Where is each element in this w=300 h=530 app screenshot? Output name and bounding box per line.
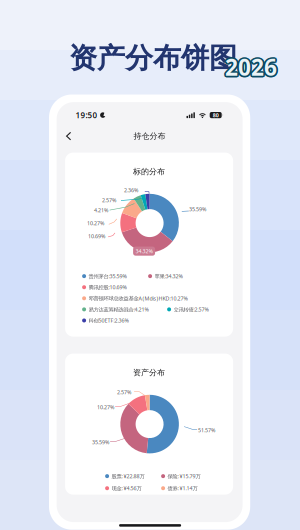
staticText: 股票: ¥22.88万 [112, 473, 145, 480]
staticText: 2026 [226, 53, 278, 83]
staticText: 2026 [225, 54, 277, 84]
staticText: 债券: ¥1.14万 [168, 485, 198, 492]
staticText: 科创50ETF:2.36% [89, 317, 129, 324]
staticText: 持仓分布 [134, 131, 166, 141]
staticText: 34.32% [136, 248, 153, 255]
staticText: 腾讯控股:10.69% [89, 284, 127, 291]
staticText: 保险: ¥15.79万 [168, 473, 201, 480]
staticText: 现金: ¥4.56万 [112, 485, 142, 492]
button[interactable]: Back [61, 126, 77, 146]
staticText: 2.57% [117, 389, 131, 396]
staticText: 80 [213, 112, 219, 119]
staticText: 51.57% [198, 427, 215, 434]
staticText: 易方达蓝筹精选混合:4.21% [89, 306, 149, 313]
staticText: 2026 [225, 50, 277, 80]
staticText: 10.69% [88, 233, 105, 240]
staticText: 2026 [226, 51, 278, 81]
staticText: 贵州茅台:35.59% [89, 273, 127, 280]
staticText: 2026 [223, 52, 275, 82]
staticText: 2026 [224, 53, 276, 83]
staticText: 2026 [227, 52, 279, 82]
staticText: 10.27% [87, 220, 104, 227]
staticText: 19:50 [76, 110, 98, 120]
staticText: 资产分布 [133, 368, 165, 377]
staticText: 资产分布饼图 [69, 41, 237, 75]
staticText: 10.27% [97, 404, 114, 411]
staticText: 2.57% [102, 197, 116, 204]
staticText: 4.21% [94, 207, 108, 214]
staticText: 35.59% [189, 206, 206, 213]
staticText: 立讯转债:2.57% [174, 306, 209, 313]
staticText: 苹果:34.32% [155, 273, 183, 280]
staticText: 2026 [225, 52, 277, 82]
staticText: 2.36% [124, 187, 138, 194]
staticText: 35.59% [92, 439, 109, 446]
staticText: 2026 [224, 51, 276, 81]
staticText: 邓普顿环球总收益基金A (Mdis)HKD:10.27% [89, 295, 188, 302]
staticText: 标的分布 [133, 167, 165, 176]
